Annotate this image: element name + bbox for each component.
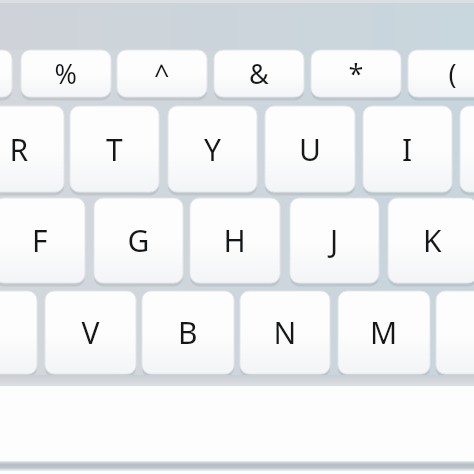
button[interactable]: Key H [190,198,280,283]
button[interactable]: Key K [388,198,474,283]
button[interactable]: Key Y [168,106,257,192]
button[interactable]: Key I [363,106,452,192]
button[interactable]: Key % [21,50,111,97]
button[interactable]: Key & [214,50,304,97]
button[interactable]: Key F [0,198,85,283]
button[interactable]: Key T [70,106,159,192]
button[interactable]: Key * [311,50,401,97]
button[interactable]: Key G [94,198,183,283]
button[interactable]: Key R [0,106,64,192]
button[interactable]: Key U [265,106,355,192]
button[interactable]: Key ( [408,50,474,97]
button[interactable]: Key B [142,291,234,374]
button[interactable]: Key V [45,291,136,374]
button[interactable]: Key N [240,291,330,374]
button[interactable]: Key ^ [117,50,207,97]
button[interactable]: Key M [338,291,430,374]
button[interactable]: Key J [290,198,379,283]
